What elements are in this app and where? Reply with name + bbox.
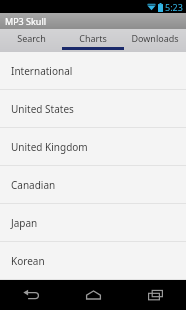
button[interactable]: Korean bbox=[0, 242, 186, 279]
staticText: Japan bbox=[11, 216, 38, 230]
button[interactable]: Back bbox=[0, 280, 62, 310]
button[interactable]: Charts bbox=[62, 29, 124, 52]
staticText: Search bbox=[17, 32, 46, 44]
button[interactable]: International bbox=[0, 52, 186, 89]
staticText: Charts bbox=[79, 32, 107, 44]
button[interactable]: Canadian bbox=[0, 166, 186, 203]
staticText: United Kingdom bbox=[11, 140, 88, 154]
staticText: Downloads bbox=[131, 32, 179, 44]
staticText: MP3 Skull bbox=[5, 15, 47, 27]
staticText: Canadian bbox=[11, 178, 56, 192]
button[interactable]: United States bbox=[0, 90, 186, 127]
button[interactable]: Japan bbox=[0, 204, 186, 241]
button[interactable]: United Kingdom bbox=[0, 128, 186, 165]
staticText: 5:23 bbox=[165, 1, 183, 13]
button[interactable]: Downloads bbox=[124, 29, 186, 52]
button[interactable]: Home bbox=[62, 280, 124, 310]
button[interactable]: Recent apps bbox=[124, 280, 186, 310]
staticText: United States bbox=[11, 102, 74, 116]
button[interactable]: Search bbox=[0, 29, 62, 52]
staticText: Korean bbox=[11, 254, 45, 268]
staticText: International bbox=[11, 64, 73, 78]
